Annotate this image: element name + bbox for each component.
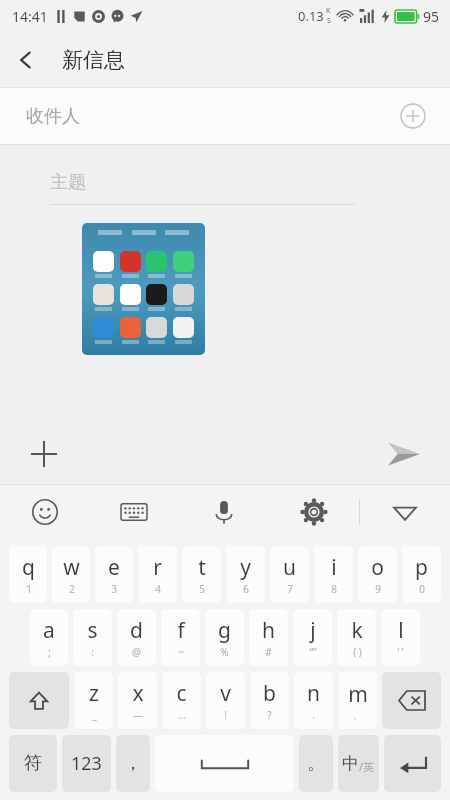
staticText: … (178, 708, 186, 722)
staticText: x (132, 679, 144, 708)
button[interactable]: Emoji (0, 484, 89, 540)
button[interactable]: l (381, 609, 420, 666)
staticText: w (63, 553, 80, 582)
staticText: ( ) (353, 645, 362, 659)
button[interactable]: j (293, 609, 332, 666)
staticText: 。 (307, 752, 325, 775)
button[interactable]: z (74, 672, 113, 729)
button[interactable]: 123 (62, 735, 111, 792)
staticText: ; (48, 645, 51, 659)
staticText: 3 (111, 582, 117, 596)
button[interactable]: Voice input (179, 484, 269, 540)
staticText: n (307, 679, 320, 708)
button[interactable]: p (402, 546, 441, 603)
staticText: @ (132, 645, 141, 659)
staticText: 0 (419, 582, 425, 596)
button[interactable]: q (9, 546, 47, 603)
staticText: h (262, 616, 275, 645)
staticText: v (220, 679, 231, 708)
staticText: 4 (155, 582, 161, 596)
button[interactable]: Enter (384, 735, 441, 792)
button[interactable]: c (162, 672, 201, 729)
staticText: K (326, 6, 331, 16)
staticText: o (371, 553, 384, 582)
staticText: % (220, 645, 229, 659)
staticText: e (108, 553, 120, 582)
staticText: u (283, 553, 296, 582)
button[interactable]: Shift (9, 672, 69, 729)
staticText: a (43, 616, 55, 645)
staticText: . (312, 708, 315, 722)
staticText: 5 (199, 582, 205, 596)
staticText: 9 (375, 582, 381, 596)
button[interactable]: g (205, 609, 244, 666)
button[interactable]: r (138, 546, 177, 603)
button[interactable]: Settings (269, 484, 359, 540)
button[interactable]: ， (116, 735, 150, 792)
button[interactable]: Hide keyboard (360, 484, 450, 540)
staticText: f (177, 616, 185, 645)
button[interactable]: h (249, 609, 288, 666)
button[interactable]: s (73, 609, 112, 666)
button[interactable]: Keyboard layout (89, 484, 179, 540)
button[interactable]: n (294, 672, 333, 729)
staticText: # (265, 645, 272, 659)
button[interactable]: 收件人 (0, 88, 450, 144)
button[interactable]: Switch language (338, 735, 379, 792)
staticText: ? (267, 708, 272, 722)
button[interactable]: e (95, 546, 133, 603)
staticText: 1 (26, 582, 32, 596)
button[interactable]: m (338, 672, 377, 729)
button[interactable]: 。 (299, 735, 333, 792)
button[interactable]: v (206, 672, 245, 729)
button[interactable]: w (52, 546, 90, 603)
staticText: 7 (287, 582, 293, 596)
button[interactable]: f (161, 609, 200, 666)
staticText: 2 (69, 582, 75, 596)
staticText: : (91, 645, 94, 659)
staticText: s (87, 616, 98, 645)
staticText: g (218, 616, 231, 645)
staticText: c (176, 679, 187, 708)
staticText: r (153, 553, 162, 582)
staticText: m (348, 680, 368, 709)
staticText: y (240, 553, 251, 582)
button[interactable]: Space (155, 735, 294, 792)
button[interactable]: u (270, 546, 309, 603)
button[interactable]: Delete (382, 672, 441, 729)
button[interactable]: x (118, 672, 157, 729)
button[interactable]: 符 (9, 735, 57, 792)
button[interactable]: t (182, 546, 221, 603)
button[interactable]: a (30, 609, 68, 666)
button[interactable]: i (314, 546, 353, 603)
button[interactable]: d (117, 609, 156, 666)
staticText: ‘ ’ (397, 645, 404, 659)
staticText: 收件人 (26, 105, 80, 128)
staticText: t (198, 553, 206, 582)
staticText: z (89, 679, 99, 708)
staticText: 123 (71, 751, 102, 776)
staticText: j (310, 616, 316, 645)
staticText: 95 (423, 7, 440, 26)
staticText: ! (224, 708, 227, 722)
staticText: 0.13 (298, 7, 324, 25)
button[interactable]: k (337, 609, 376, 666)
button[interactable]: Send (380, 430, 428, 478)
staticText: p (415, 553, 428, 582)
staticText: ， (124, 752, 142, 775)
button[interactable]: y (226, 546, 265, 603)
button[interactable]: b (250, 672, 289, 729)
button[interactable]: Back (0, 34, 52, 86)
staticText: 8 (331, 582, 337, 596)
staticText: 中 (342, 753, 359, 774)
staticText: l (398, 616, 404, 645)
staticText: 符 (24, 752, 42, 775)
button[interactable]: o (358, 546, 397, 603)
staticText: d (130, 616, 143, 645)
staticText: 6 (243, 582, 249, 596)
button[interactable]: Add recipient (396, 99, 430, 133)
button[interactable]: Attached image (82, 223, 205, 355)
button[interactable]: Attach (22, 432, 66, 476)
staticText: 14:41 (12, 7, 48, 26)
staticText: 新信息 (62, 47, 125, 73)
